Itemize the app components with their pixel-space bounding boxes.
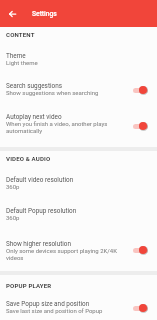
button[interactable]: Autoplay next video [0, 108, 157, 138]
staticText: Save Popup size and position [6, 300, 90, 308]
staticText: Light theme [6, 59, 38, 66]
staticText: Settings [32, 10, 57, 18]
button[interactable]: Toggle [131, 119, 151, 133]
staticText: VIDEO & AUDIO [6, 155, 51, 162]
staticText: Only some devices support playing 2K/4K … [6, 247, 130, 261]
staticText: Show suggestions when searching [6, 89, 99, 96]
staticText: Autoplay next video [6, 113, 62, 121]
staticText: CONTENT [6, 31, 35, 38]
button[interactable]: Show higher resolution [0, 235, 157, 265]
staticText: Default video resolution [6, 176, 74, 184]
staticText: 360p [6, 214, 20, 221]
button[interactable]: Default Popup resolution [0, 202, 157, 224]
button[interactable]: Default video resolution [0, 171, 157, 193]
staticText: POPUP PLAYER [6, 282, 52, 289]
staticText: 360p [6, 183, 20, 190]
button[interactable]: Toggle [131, 243, 151, 257]
staticText: Save last size and position of Popup [6, 307, 103, 314]
staticText: Default Popup resolution [6, 207, 77, 215]
button[interactable]: Back [0, 0, 24, 27]
button[interactable]: Search suggestions [0, 77, 157, 99]
button[interactable]: Theme [0, 47, 157, 69]
staticText: Theme [6, 52, 26, 60]
button[interactable]: Toggle [131, 83, 151, 97]
staticText: When you finish a video, another plays a… [6, 120, 130, 134]
button[interactable]: Save Popup size and position [0, 295, 157, 317]
button[interactable]: Toggle [131, 301, 151, 315]
staticText: Show higher resolution [6, 240, 72, 248]
staticText: Search suggestions [6, 82, 63, 90]
